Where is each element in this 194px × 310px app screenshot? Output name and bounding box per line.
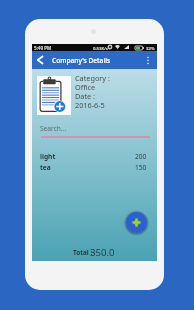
staticText: Date : (75, 91, 96, 101)
button[interactable]: Add item (124, 210, 149, 235)
staticText: Office (75, 82, 96, 92)
staticText: light (40, 152, 56, 161)
staticText: 150 (135, 163, 147, 172)
button[interactable]: light (32, 152, 157, 161)
button[interactable]: More options (141, 51, 155, 69)
staticText: 32% (146, 45, 155, 51)
staticText: 2016-6-5 (75, 100, 105, 110)
staticText: Category : (75, 73, 110, 83)
button[interactable]: tea (32, 163, 157, 172)
staticText: 0.53K/s (93, 45, 108, 51)
staticText: tea (40, 163, 51, 172)
staticText: Search... (40, 124, 67, 133)
staticText: Total : (73, 248, 93, 257)
staticText: 200 (135, 152, 147, 161)
staticText: 350.0 (90, 246, 115, 259)
button[interactable]: Back (32, 51, 47, 69)
staticText: 5:49 PM (34, 45, 52, 51)
staticText: Company's Details (52, 56, 111, 65)
